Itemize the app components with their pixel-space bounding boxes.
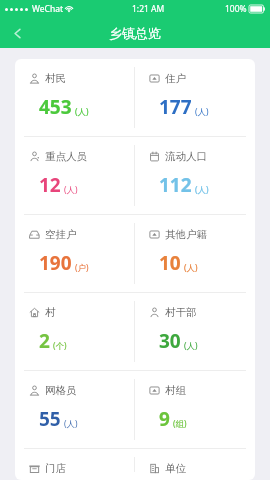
staticText: (个): [53, 340, 67, 352]
staticText: 住户: [165, 72, 186, 85]
staticText: 村干部: [165, 306, 197, 319]
staticText: (组): [173, 418, 187, 430]
staticText: (人): [184, 340, 198, 352]
button[interactable]: 单位: [135, 449, 255, 480]
staticText: 流动人口: [165, 150, 207, 163]
button[interactable]: 重点人员: [15, 137, 134, 214]
button[interactable]: 门店: [15, 449, 134, 480]
staticText: (人): [184, 262, 198, 274]
staticText: 其他户籍: [165, 228, 207, 241]
button[interactable]: 其他户籍: [135, 215, 255, 292]
button[interactable]: 空挂户: [15, 215, 134, 292]
staticText: 30: [159, 328, 181, 354]
button[interactable]: 网格员: [15, 371, 134, 448]
button[interactable]: Back: [0, 18, 34, 48]
staticText: 55: [39, 406, 61, 432]
staticText: 村: [45, 306, 56, 319]
staticText: 重点人员: [45, 150, 87, 163]
button[interactable]: 村干部: [135, 293, 255, 370]
button[interactable]: 村民: [15, 59, 134, 136]
staticText: 453: [39, 94, 72, 120]
staticText: (人): [195, 106, 209, 118]
staticText: 村组: [165, 384, 186, 397]
staticText: 门店: [45, 462, 66, 475]
staticText: (户): [75, 262, 89, 274]
staticText: 12: [39, 172, 61, 198]
staticText: 190: [39, 250, 72, 276]
button[interactable]: 村组: [135, 371, 255, 448]
staticText: 空挂户: [45, 228, 77, 241]
staticText: (人): [195, 184, 209, 196]
staticText: 177: [159, 94, 192, 120]
staticText: (人): [64, 418, 78, 430]
staticText: 112: [159, 172, 192, 198]
staticText: 单位: [165, 462, 186, 475]
button[interactable]: 流动人口: [135, 137, 255, 214]
staticText: 乡镇总览: [109, 25, 161, 41]
staticText: 村民: [45, 72, 66, 85]
staticText: 10: [159, 250, 181, 276]
staticText: WeChat: [32, 3, 63, 15]
staticText: 2: [39, 328, 50, 354]
button[interactable]: 村: [15, 293, 134, 370]
staticText: (人): [75, 106, 89, 118]
staticText: (人): [64, 184, 78, 196]
staticText: 网格员: [45, 384, 77, 397]
staticText: 9: [159, 406, 170, 432]
staticText: 100%: [225, 3, 247, 15]
button[interactable]: 住户: [135, 59, 255, 136]
staticText: 1:21 AM: [132, 3, 165, 15]
